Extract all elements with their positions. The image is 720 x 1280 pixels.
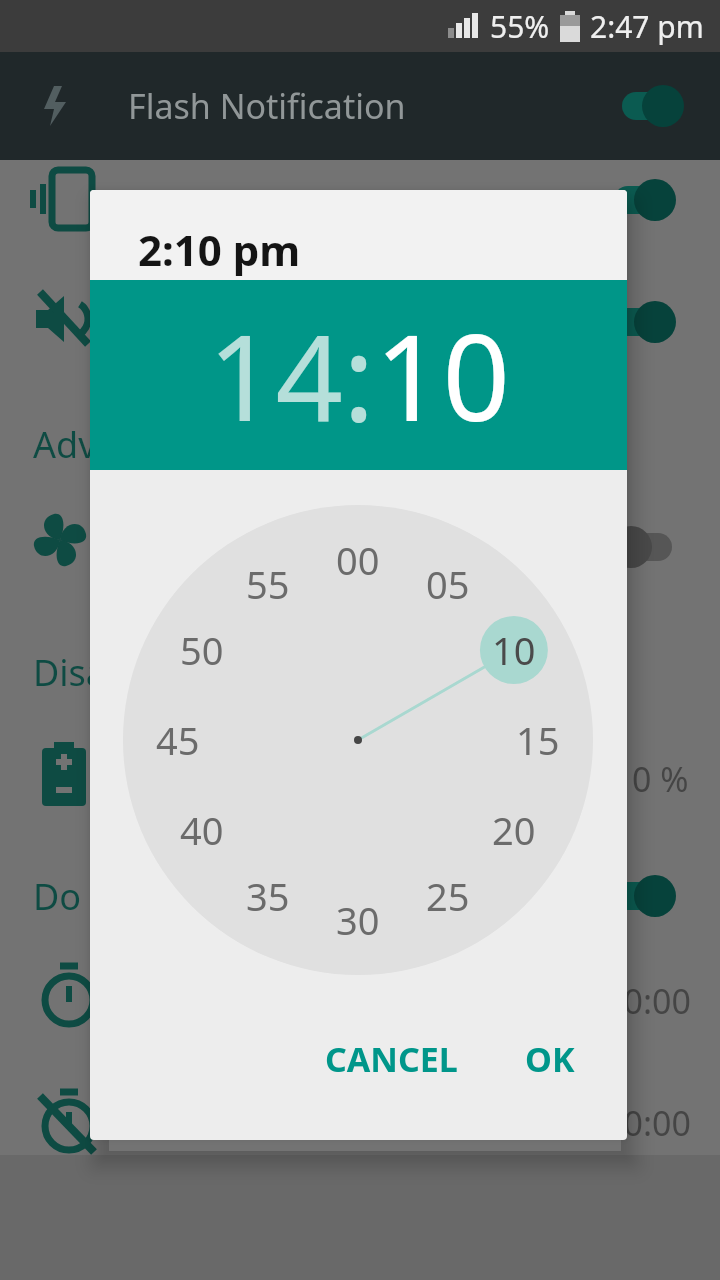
- button[interactable]: [610, 301, 676, 343]
- staticText: 30: [336, 894, 380, 946]
- staticText: 00: [336, 534, 380, 586]
- staticText: OK: [525, 1036, 575, 1082]
- staticText: 45: [156, 714, 200, 766]
- button[interactable]: [610, 179, 676, 221]
- staticText: 00:00: [604, 1100, 691, 1146]
- staticText: 0 %: [632, 756, 689, 802]
- button[interactable]: CANCEL: [313, 1024, 470, 1094]
- staticText: 14: [208, 295, 343, 456]
- button[interactable]: [618, 85, 684, 127]
- button[interactable]: [610, 526, 676, 568]
- staticText: 2:10 pm: [138, 221, 301, 278]
- staticText: :: [343, 295, 375, 456]
- staticText: Adv: [33, 420, 97, 469]
- staticText: 25: [426, 870, 470, 922]
- staticText: CANCEL: [325, 1036, 458, 1082]
- button[interactable]: OK: [513, 1024, 587, 1094]
- staticText: 15: [516, 714, 560, 766]
- staticText: 55: [246, 558, 290, 610]
- staticText: Disa: [33, 648, 107, 697]
- staticText: 05: [426, 558, 470, 610]
- staticText: 50: [180, 624, 224, 676]
- staticText: Flash Notification: [128, 83, 406, 129]
- staticText: 55%: [490, 6, 550, 47]
- staticText: Do n: [33, 872, 113, 921]
- staticText: 40: [180, 804, 224, 856]
- staticText: 35: [246, 870, 290, 922]
- staticText: 10: [492, 624, 536, 676]
- staticText: 10: [375, 295, 510, 456]
- staticText: 20: [492, 804, 536, 856]
- button[interactable]: [610, 875, 676, 917]
- staticText: 2:47 pm: [590, 6, 704, 47]
- staticText: 00:00: [604, 978, 691, 1024]
